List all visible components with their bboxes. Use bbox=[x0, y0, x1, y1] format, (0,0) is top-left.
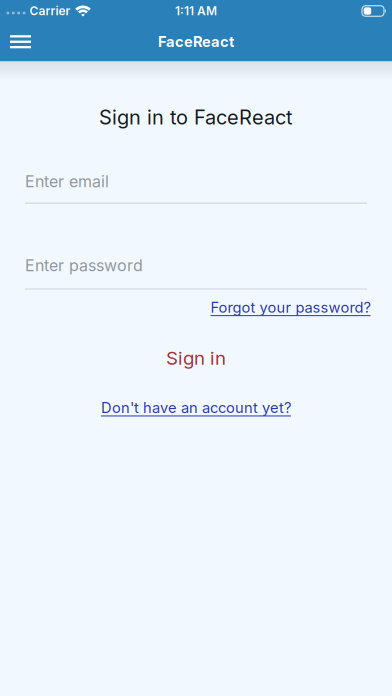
staticText: FaceReact bbox=[158, 33, 234, 50]
staticText: Carrier bbox=[29, 4, 70, 18]
button[interactable]: Forgot your password? bbox=[210, 299, 370, 316]
button[interactable]: Sign in bbox=[25, 347, 367, 369]
button[interactable]: Menu bbox=[0, 22, 31, 61]
button[interactable]: Don't have an account yet? bbox=[25, 399, 367, 416]
button[interactable]: Enter password bbox=[25, 256, 367, 290]
button[interactable]: Enter email bbox=[25, 172, 367, 204]
staticText: Forgot your password? bbox=[210, 299, 370, 316]
staticText: Enter password bbox=[25, 256, 143, 275]
staticText: Enter email bbox=[25, 172, 109, 191]
staticText: Sign in to FaceReact bbox=[99, 105, 293, 129]
staticText: 1:11 AM bbox=[175, 4, 217, 18]
staticText: Sign in bbox=[166, 347, 226, 369]
staticText: Don't have an account yet? bbox=[101, 399, 291, 416]
